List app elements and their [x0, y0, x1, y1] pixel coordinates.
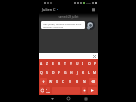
staticText: Julien C	[42, 7, 56, 12]
button[interactable]: Recents	[82, 95, 89, 102]
button[interactable]: H	[68, 68, 74, 77]
staticText: B	[76, 79, 79, 84]
button[interactable]: Y	[68, 59, 74, 68]
staticText: P	[94, 61, 97, 66]
button[interactable]: O	[86, 59, 92, 68]
staticText: H	[70, 70, 73, 75]
button[interactable]: S	[44, 68, 50, 77]
button[interactable]: Home	[65, 95, 72, 102]
button[interactable]: X	[54, 77, 60, 86]
staticText: X	[56, 79, 58, 84]
staticText: G	[64, 70, 67, 75]
button[interactable]: More options	[91, 7, 96, 12]
button[interactable]: C	[60, 77, 67, 86]
staticText: W	[49, 79, 53, 84]
staticText: V	[69, 79, 72, 84]
button[interactable]: Emoji	[40, 87, 44, 94]
staticText: O	[88, 61, 91, 66]
staticText: Hey Julien, toujours partant pour demain…	[43, 22, 83, 28]
button[interactable]: Z	[44, 59, 50, 68]
staticText: ?123	[46, 88, 50, 94]
staticText: N	[83, 79, 86, 84]
staticText: samedi 28 juillet	[39, 15, 98, 19]
staticText: I	[82, 61, 84, 66]
button[interactable]: L	[86, 68, 92, 77]
staticText: 19%	[86, 1, 91, 4]
button[interactable]: Send	[88, 87, 97, 94]
button[interactable]: J	[74, 68, 80, 77]
staticText: A	[40, 61, 43, 66]
staticText: Y	[70, 61, 72, 66]
staticText: K	[82, 70, 85, 75]
button[interactable]: Back	[49, 95, 56, 102]
button[interactable]: M	[92, 68, 98, 77]
button[interactable]: D	[50, 68, 56, 77]
staticText: R	[58, 61, 61, 66]
button[interactable]: Q	[39, 68, 44, 77]
staticText: U	[76, 61, 79, 66]
button[interactable]: P	[92, 59, 98, 68]
staticText: J	[77, 70, 78, 75]
button[interactable]: W	[48, 77, 54, 86]
button[interactable]: Symbols	[46, 87, 50, 94]
staticText: F	[58, 70, 60, 75]
button[interactable]: K	[80, 68, 86, 77]
staticText: T	[64, 61, 66, 66]
staticText: Z	[46, 61, 48, 66]
button[interactable]: Backspace	[89, 78, 97, 85]
button[interactable]: B	[74, 77, 81, 86]
staticText: S	[46, 70, 48, 75]
button[interactable]: G	[62, 68, 68, 77]
staticText: E	[52, 61, 54, 66]
button[interactable]: A	[39, 59, 44, 68]
staticText: M	[93, 70, 97, 75]
button[interactable]: V	[67, 77, 74, 86]
button[interactable]: R	[56, 59, 62, 68]
button[interactable]: I	[80, 59, 86, 68]
staticText: Q	[40, 70, 43, 75]
button[interactable]: E	[50, 59, 56, 68]
staticText: L	[88, 70, 90, 75]
button[interactable]: T	[62, 59, 68, 68]
button[interactable]: U	[74, 59, 80, 68]
button[interactable]: Shift	[40, 78, 47, 85]
button[interactable]: Keyboard settings	[92, 54, 96, 58]
button[interactable]: Julien C	[42, 7, 58, 12]
button[interactable]: Hey Julien, toujours partant pour demain…	[41, 21, 85, 29]
button[interactable]: Period	[82, 87, 86, 94]
staticText: D	[52, 70, 55, 75]
staticText: C	[62, 79, 65, 84]
button[interactable]: N	[81, 77, 88, 86]
button[interactable]: F	[56, 68, 62, 77]
